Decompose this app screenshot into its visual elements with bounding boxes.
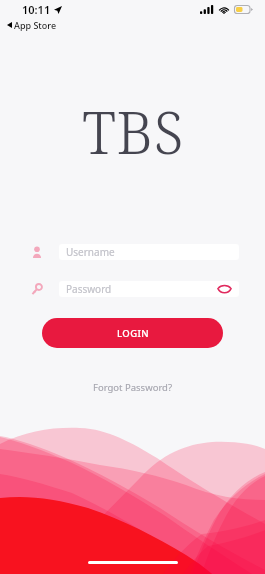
button[interactable]: Username (59, 244, 239, 260)
staticText: Username (66, 245, 115, 259)
staticText: 10:11 (22, 2, 51, 17)
staticText: Password (66, 282, 112, 296)
button[interactable]: LOGIN (42, 318, 223, 348)
button[interactable]: Show password (217, 284, 232, 295)
staticText: TBS (82, 92, 184, 171)
staticText: Forgot Password? (93, 381, 173, 394)
button[interactable]: Password (59, 281, 239, 297)
staticText: LOGIN (117, 327, 149, 340)
button[interactable]: Forgot Password? (87, 378, 179, 397)
staticText: App Store (14, 19, 57, 31)
